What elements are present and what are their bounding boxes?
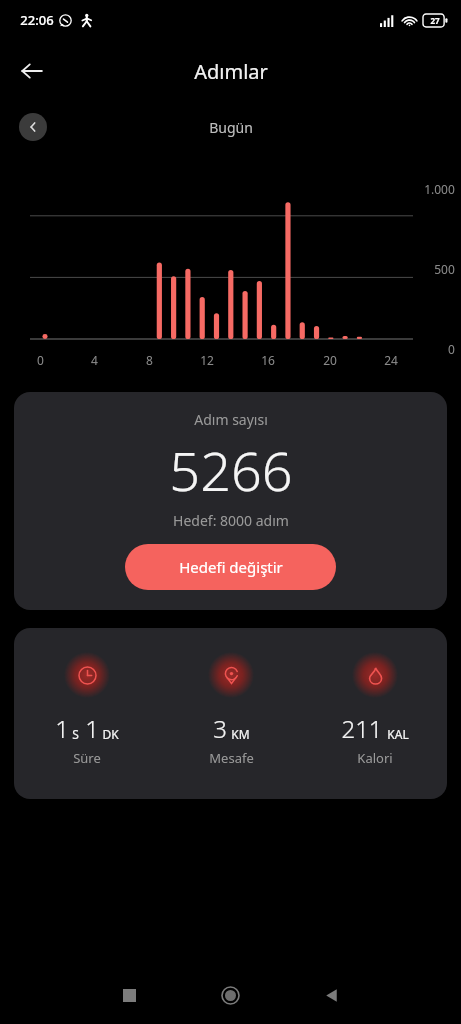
staticText: 3 (213, 712, 227, 745)
staticText: Hedef: 8000 adım (173, 511, 289, 530)
staticText: KAL (387, 726, 409, 742)
staticText: Adım sayısı (194, 410, 268, 429)
staticText: 27 (430, 15, 440, 26)
staticText: 20 (323, 352, 337, 368)
staticText: 0 (448, 341, 455, 357)
staticText: 0 (37, 352, 44, 368)
button[interactable]: 1 (14, 650, 159, 769)
staticText: Adımlar (194, 58, 268, 85)
staticText: 22:06 (20, 11, 54, 29)
staticText: Hedefi değiştir (179, 557, 283, 577)
button[interactable]: 211 (303, 650, 447, 769)
staticText: DK (102, 726, 119, 742)
staticText: 8 (146, 352, 153, 368)
button[interactable]: Back (281, 966, 382, 1024)
staticText: 12 (200, 352, 214, 368)
staticText: 4 (91, 352, 98, 368)
button[interactable]: Adım sayısı (14, 392, 447, 610)
button[interactable]: Recent apps (79, 966, 180, 1024)
staticText: KM (231, 726, 250, 742)
staticText: 211 (341, 712, 383, 745)
staticText: 1.000 (424, 181, 455, 197)
staticText: Bugün (209, 118, 253, 137)
staticText: Süre (73, 749, 101, 767)
staticText: 24 (384, 352, 398, 368)
staticText: 5266 (169, 433, 293, 507)
staticText: 1 (85, 712, 99, 745)
staticText: S (72, 726, 79, 742)
button[interactable]: Hedefi değiştir (125, 544, 336, 590)
button[interactable]: 3 (159, 650, 303, 769)
staticText: 1 (55, 712, 69, 745)
staticText: 500 (434, 261, 455, 277)
button[interactable]: Home (180, 966, 281, 1024)
staticText: 16 (261, 352, 275, 368)
button[interactable]: Previous day (19, 113, 47, 141)
staticText: Mesafe (209, 749, 254, 767)
button[interactable]: Back (8, 47, 56, 95)
staticText: Kalori (357, 749, 393, 767)
